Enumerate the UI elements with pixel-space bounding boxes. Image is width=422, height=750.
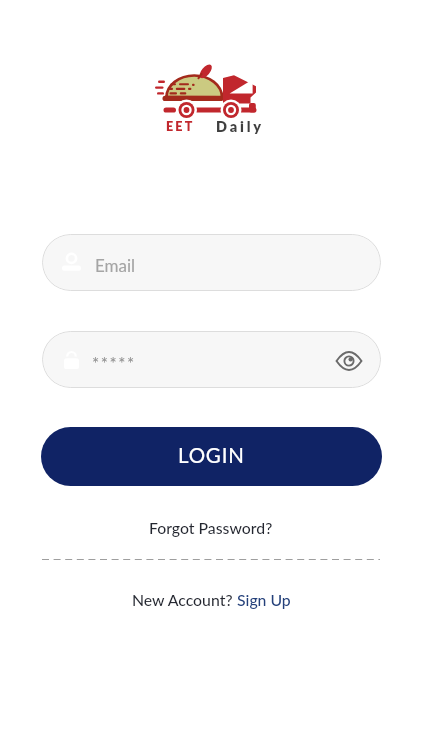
staticText: ***** [92,353,136,373]
staticText: Email [95,255,136,275]
staticText: New Account? [132,590,237,609]
button[interactable]: Email [42,234,381,291]
staticText: Daily [216,118,264,134]
button[interactable]: ***** [42,331,381,388]
button[interactable]: Forgot Password? [149,518,273,537]
button[interactable]: LOGIN [41,427,382,486]
staticText: EET [166,119,195,132]
staticText: LOGIN [178,443,245,468]
button[interactable]: Sign Up [237,590,291,609]
